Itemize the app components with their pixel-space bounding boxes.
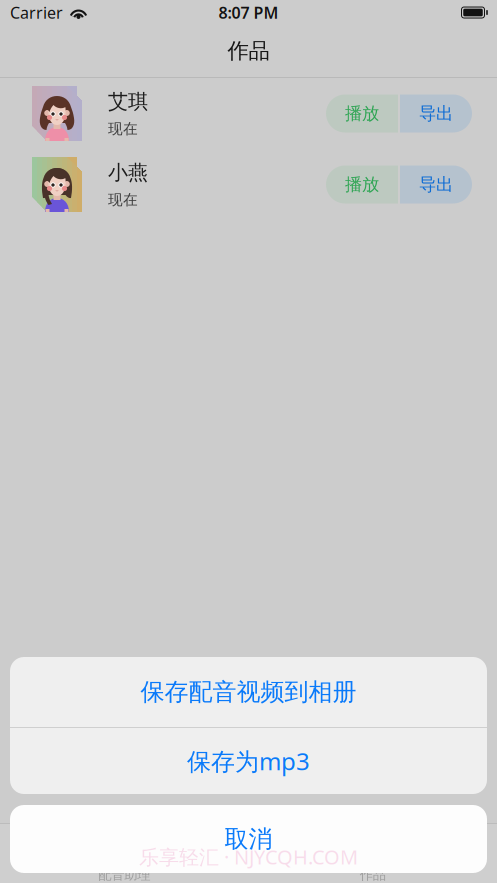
staticText: 播放 (345, 174, 379, 195)
staticText: 现在 (108, 191, 138, 209)
button[interactable]: 作品 (248, 824, 497, 883)
button[interactable]: 保存配音视频到相册 (10, 657, 487, 727)
staticText: Carrier (10, 2, 63, 23)
button[interactable]: 取消 (10, 805, 487, 873)
staticText: 作品 (360, 867, 386, 883)
staticText: 取消 (224, 824, 272, 854)
staticText: 现在 (108, 120, 138, 138)
staticText: 小燕 (108, 160, 148, 185)
button[interactable]: 保存为mp3 (10, 728, 487, 794)
staticText: 保存配音视频到相册 (140, 677, 356, 707)
button[interactable]: 导出 (400, 165, 472, 203)
staticText: 配音助理 (98, 867, 150, 883)
staticText: 乐享轻汇 · NJYCQH.COM (139, 843, 358, 870)
staticText: 导出 (419, 103, 453, 124)
staticText: 作品 (227, 38, 269, 64)
button[interactable]: 导出 (400, 94, 472, 132)
button[interactable]: 配音助理 (0, 824, 248, 883)
button[interactable]: 播放 (326, 94, 398, 132)
staticText: 播放 (345, 103, 379, 124)
staticText: 导出 (419, 174, 453, 195)
staticText: 8:07 PM (218, 2, 278, 23)
staticText: 保存为mp3 (187, 745, 310, 777)
staticText: 艾琪 (108, 89, 148, 114)
button[interactable]: 播放 (326, 165, 398, 203)
